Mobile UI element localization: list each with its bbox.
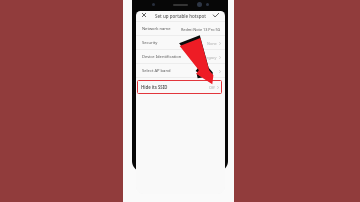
staticText: Hide its SSID — [141, 84, 168, 90]
staticText: Device Identification — [142, 54, 182, 60]
button[interactable]: Select AP band — [136, 64, 225, 78]
staticText: Redmi Note 13 Pro 5G — [181, 27, 221, 32]
button[interactable]: Hide its SSID — [137, 80, 222, 94]
button[interactable]: Done — [211, 11, 220, 19]
staticText: Network name — [142, 26, 171, 32]
button[interactable]: Network name — [136, 22, 225, 36]
staticText: Legacy — [204, 55, 217, 60]
button[interactable]: Set up portable hotspot — [155, 13, 206, 19]
button[interactable]: Device Identification — [136, 50, 225, 64]
staticText: Off — [209, 85, 215, 90]
staticText: Select AP band — [142, 68, 171, 74]
button[interactable]: Security — [136, 36, 225, 50]
button[interactable]: Close — [139, 11, 148, 19]
staticText: Security — [142, 40, 158, 46]
staticText: None — [207, 41, 217, 46]
staticText: Set up portable hotspot — [155, 13, 206, 19]
